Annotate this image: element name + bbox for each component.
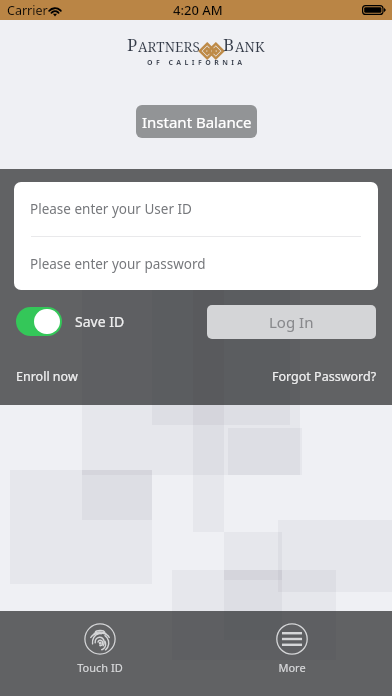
staticText: B xyxy=(223,33,235,56)
staticText: Touch ID xyxy=(77,660,123,675)
button[interactable]: Log In xyxy=(207,305,376,339)
button[interactable]: Save ID xyxy=(16,307,125,336)
staticText: Carrier xyxy=(7,2,48,19)
staticText: More xyxy=(278,660,306,675)
staticText: Enroll now xyxy=(16,368,78,385)
button[interactable]: Instant Balance xyxy=(136,105,257,138)
button[interactable]: Enroll now xyxy=(16,368,78,385)
staticText: ANK xyxy=(235,38,265,56)
staticText: Log In xyxy=(269,312,314,332)
other: More xyxy=(276,623,308,655)
other: Touch ID xyxy=(84,623,116,655)
staticText: Forgot Password? xyxy=(272,368,377,385)
staticText: Please enter your password xyxy=(30,255,206,273)
button[interactable]: More xyxy=(252,623,332,675)
staticText: P xyxy=(127,33,138,56)
button[interactable]: Forgot Password? xyxy=(272,368,377,385)
staticText: Instant Balance xyxy=(142,112,252,132)
staticText: Save ID xyxy=(75,312,125,331)
staticText: 4:20 AM xyxy=(173,1,223,19)
button[interactable]: Please enter your password xyxy=(14,237,378,290)
staticText: OF CALIFORNIA xyxy=(147,58,246,68)
button[interactable]: Touch ID xyxy=(60,623,140,675)
staticText: ARTNERS xyxy=(138,38,200,56)
staticText: Please enter your User ID xyxy=(30,200,192,218)
button[interactable]: Please enter your User ID xyxy=(14,182,378,236)
